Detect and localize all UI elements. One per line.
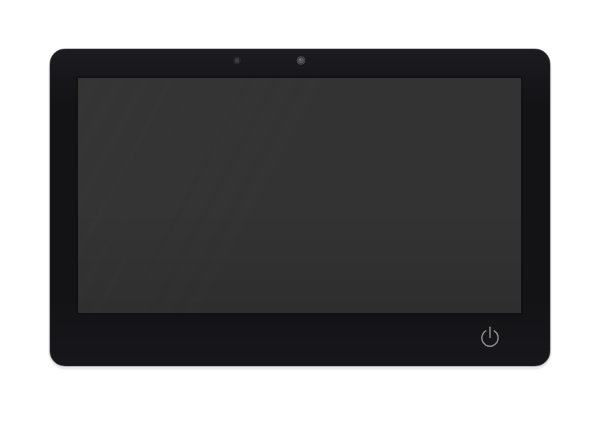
button[interactable]: Power	[475, 323, 505, 353]
button[interactable]: Tablet device, screen off	[0, 0, 600, 423]
